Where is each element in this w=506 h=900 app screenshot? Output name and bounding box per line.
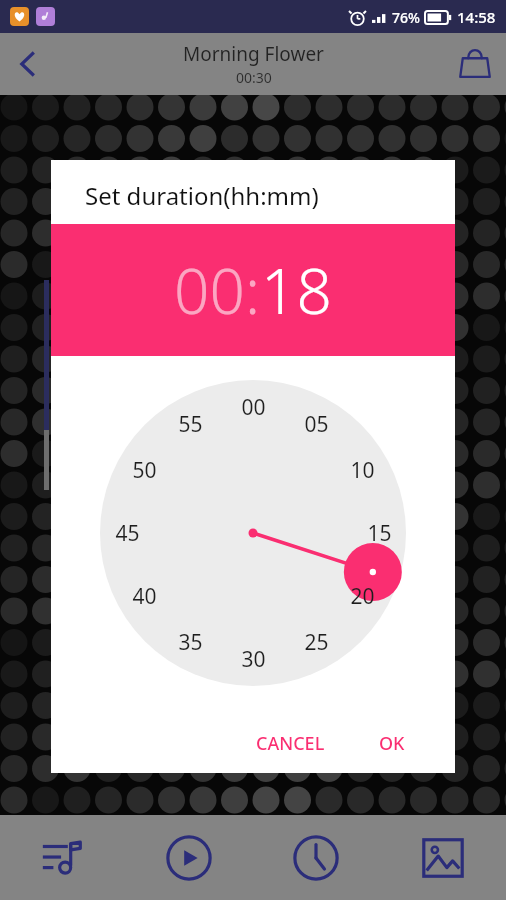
staticText: 30 [241, 645, 266, 674]
staticText: 05 [304, 410, 329, 439]
staticText: 50 [132, 456, 157, 485]
button[interactable]: Playlist [0, 815, 126, 900]
staticText: : [245, 248, 261, 332]
button[interactable]: CANCEL [242, 723, 339, 764]
staticText: Set duration(hh:mm) [85, 179, 319, 212]
staticText: 00 [241, 393, 266, 422]
button[interactable]: 00 [174, 248, 245, 332]
staticText: CANCEL [256, 731, 325, 756]
staticText: Morning Flower [183, 41, 324, 67]
staticText: 14:58 [457, 7, 496, 27]
staticText: 20 [350, 582, 375, 611]
staticText: 40 [132, 582, 157, 611]
staticText: 25 [304, 628, 329, 657]
staticText: 45 [115, 519, 140, 548]
button[interactable]: 18 [261, 248, 332, 332]
staticText: 76% [392, 8, 420, 27]
staticText: 35 [178, 628, 203, 657]
staticText: OK [379, 731, 405, 756]
button[interactable]: Play [126, 815, 252, 900]
button[interactable]: Minute picker [51, 356, 455, 713]
button[interactable]: Timer [252, 815, 379, 900]
staticText: 15 [367, 519, 392, 548]
staticText: 00:30 [236, 68, 272, 87]
button[interactable]: Image [379, 815, 506, 900]
staticText: 55 [178, 410, 203, 439]
staticText: 10 [350, 456, 375, 485]
button[interactable]: OK [365, 723, 419, 764]
button[interactable]: Back [0, 36, 56, 92]
button[interactable]: Shop [444, 33, 506, 95]
